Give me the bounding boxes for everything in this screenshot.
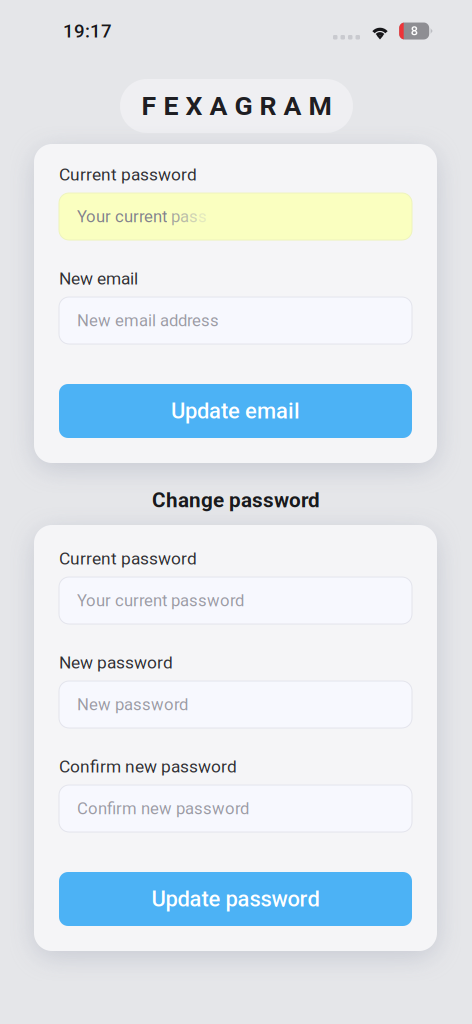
button[interactable]: Update password	[59, 872, 412, 926]
staticText: s	[198, 207, 207, 226]
staticText: 8	[411, 24, 418, 38]
staticText: Confirm new password	[77, 799, 249, 818]
staticText: New password	[77, 695, 188, 714]
staticText: Your current password	[77, 591, 244, 610]
staticText: 19:17	[63, 20, 112, 42]
staticText: New email address	[77, 311, 219, 330]
staticText: Update email	[171, 398, 300, 424]
staticText: New email	[59, 268, 138, 289]
staticText: Update password	[151, 886, 319, 912]
staticText: Confirm new password	[59, 756, 237, 777]
staticText: s	[189, 207, 198, 226]
staticText: p	[171, 207, 180, 226]
button[interactable]: Update email	[59, 384, 412, 438]
staticText: Your current	[77, 207, 171, 226]
staticText: Current password	[59, 164, 197, 185]
staticText: FEXAGRAM	[141, 90, 331, 122]
staticText: Current password	[59, 548, 197, 569]
staticText: a	[180, 207, 189, 226]
staticText: New password	[59, 652, 173, 673]
staticText: Change password	[152, 488, 320, 512]
